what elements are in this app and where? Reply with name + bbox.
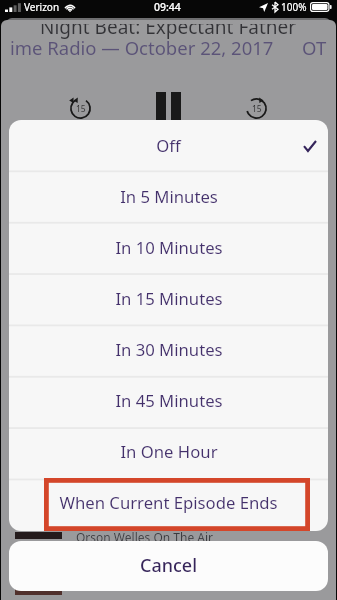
staticText: Night Beat: Expectant Father — [40, 24, 297, 40]
staticText: When Current Episode Ends — [59, 491, 278, 514]
staticText: In 15 Minutes — [115, 287, 223, 310]
staticText: In 45 Minutes — [115, 389, 223, 412]
button[interactable]: In 45 Minutes — [9, 375, 328, 426]
button[interactable]: When Current Episode Ends — [9, 477, 328, 528]
staticText: 09:44 — [154, 0, 181, 14]
staticText: In 30 Minutes — [115, 338, 223, 361]
button[interactable]: In 15 Minutes — [9, 273, 328, 324]
button[interactable]: In 5 Minutes — [9, 171, 328, 222]
button[interactable]: In 10 Minutes — [9, 222, 328, 273]
staticText: Cancel — [140, 553, 198, 578]
staticText: OT — [302, 35, 327, 60]
staticText: 100% — [281, 0, 307, 14]
staticText: In 10 Minutes — [115, 236, 223, 259]
staticText: In 5 Minutes — [120, 185, 218, 208]
staticText: Verizon — [24, 0, 60, 14]
staticText: In One Hour — [120, 440, 218, 463]
staticText: 15 — [252, 103, 262, 115]
button[interactable]: Off — [9, 120, 328, 171]
button[interactable]: Pause — [156, 92, 182, 120]
button[interactable]: Cancel — [9, 541, 328, 591]
staticText: Off — [156, 134, 181, 157]
button[interactable]: In One Hour — [9, 426, 328, 477]
staticText: Orson Welles On The Air — [76, 529, 213, 545]
button[interactable]: Skip back 15 seconds — [70, 98, 91, 119]
staticText: 15 — [76, 103, 86, 115]
button[interactable]: In 30 Minutes — [9, 324, 328, 375]
staticText: ime Radio — October 22, 2017 — [10, 35, 274, 60]
button[interactable]: Skip forward 15 seconds — [246, 98, 267, 119]
